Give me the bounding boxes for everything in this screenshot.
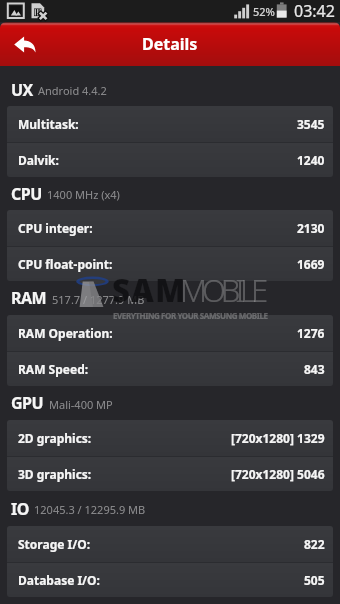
button[interactable]: CPU float-point: xyxy=(7,247,333,281)
staticText: 03:42 xyxy=(294,0,335,22)
button[interactable]: 3D graphics: xyxy=(7,457,333,491)
staticText: [720x1280] 5046 xyxy=(231,466,325,482)
staticText: GPU xyxy=(11,392,44,414)
staticText: 52% xyxy=(253,4,275,19)
staticText: 517.7 / 1277.9 MB xyxy=(52,292,145,307)
staticText: 2D graphics: xyxy=(18,430,92,446)
staticText: IO xyxy=(11,498,29,520)
staticText: 1669 xyxy=(297,256,325,272)
staticText: 822 xyxy=(304,536,325,552)
staticText: Dalvik: xyxy=(18,152,59,168)
staticText: Details xyxy=(142,33,198,55)
staticText: 2130 xyxy=(297,220,325,236)
button[interactable]: CPU integer: xyxy=(7,210,333,246)
button[interactable]: Dalvik: xyxy=(7,143,333,177)
staticText: 3D graphics: xyxy=(18,466,92,482)
staticText: EVERYTHING FOR YOUR SAMSUNG MOBILE xyxy=(113,310,268,321)
button[interactable]: Multitask: xyxy=(7,106,333,142)
button[interactable]: RAM Operation: xyxy=(7,315,333,351)
staticText: 3545 xyxy=(297,116,325,132)
staticText: 843 xyxy=(304,361,325,377)
staticText: RAM Operation: xyxy=(18,325,113,341)
staticText: 505 xyxy=(304,572,325,588)
staticText: Mali-400 MP xyxy=(49,397,113,412)
staticText: RAM Speed: xyxy=(18,361,89,377)
staticText: UX xyxy=(11,79,33,101)
staticText: Android 4.4.2 xyxy=(38,83,107,98)
staticText: CPU integer: xyxy=(18,220,93,236)
staticText: 12045.3 / 12295.9 MB xyxy=(34,502,146,517)
staticText: 1400 MHz (x4) xyxy=(47,187,120,202)
staticText: Database I/O: xyxy=(18,572,100,588)
button[interactable]: RAM Speed: xyxy=(7,352,333,386)
button[interactable]: Database I/O: xyxy=(7,563,333,597)
staticText: 1240 xyxy=(297,152,325,168)
staticText: CPU xyxy=(11,183,42,205)
staticText: CPU float-point: xyxy=(18,256,113,272)
staticText: MOBILE xyxy=(180,269,264,311)
staticText: Multitask: xyxy=(18,116,79,132)
staticText: Storage I/O: xyxy=(18,536,91,552)
button[interactable]: Back xyxy=(0,22,44,66)
button[interactable]: Storage I/O: xyxy=(7,526,333,562)
staticText: [720x1280] 1329 xyxy=(231,430,325,446)
staticText: 1276 xyxy=(297,325,325,341)
staticText: SAM xyxy=(112,269,187,311)
button[interactable]: 2D graphics: xyxy=(7,420,333,456)
staticText: RAM xyxy=(11,287,47,309)
